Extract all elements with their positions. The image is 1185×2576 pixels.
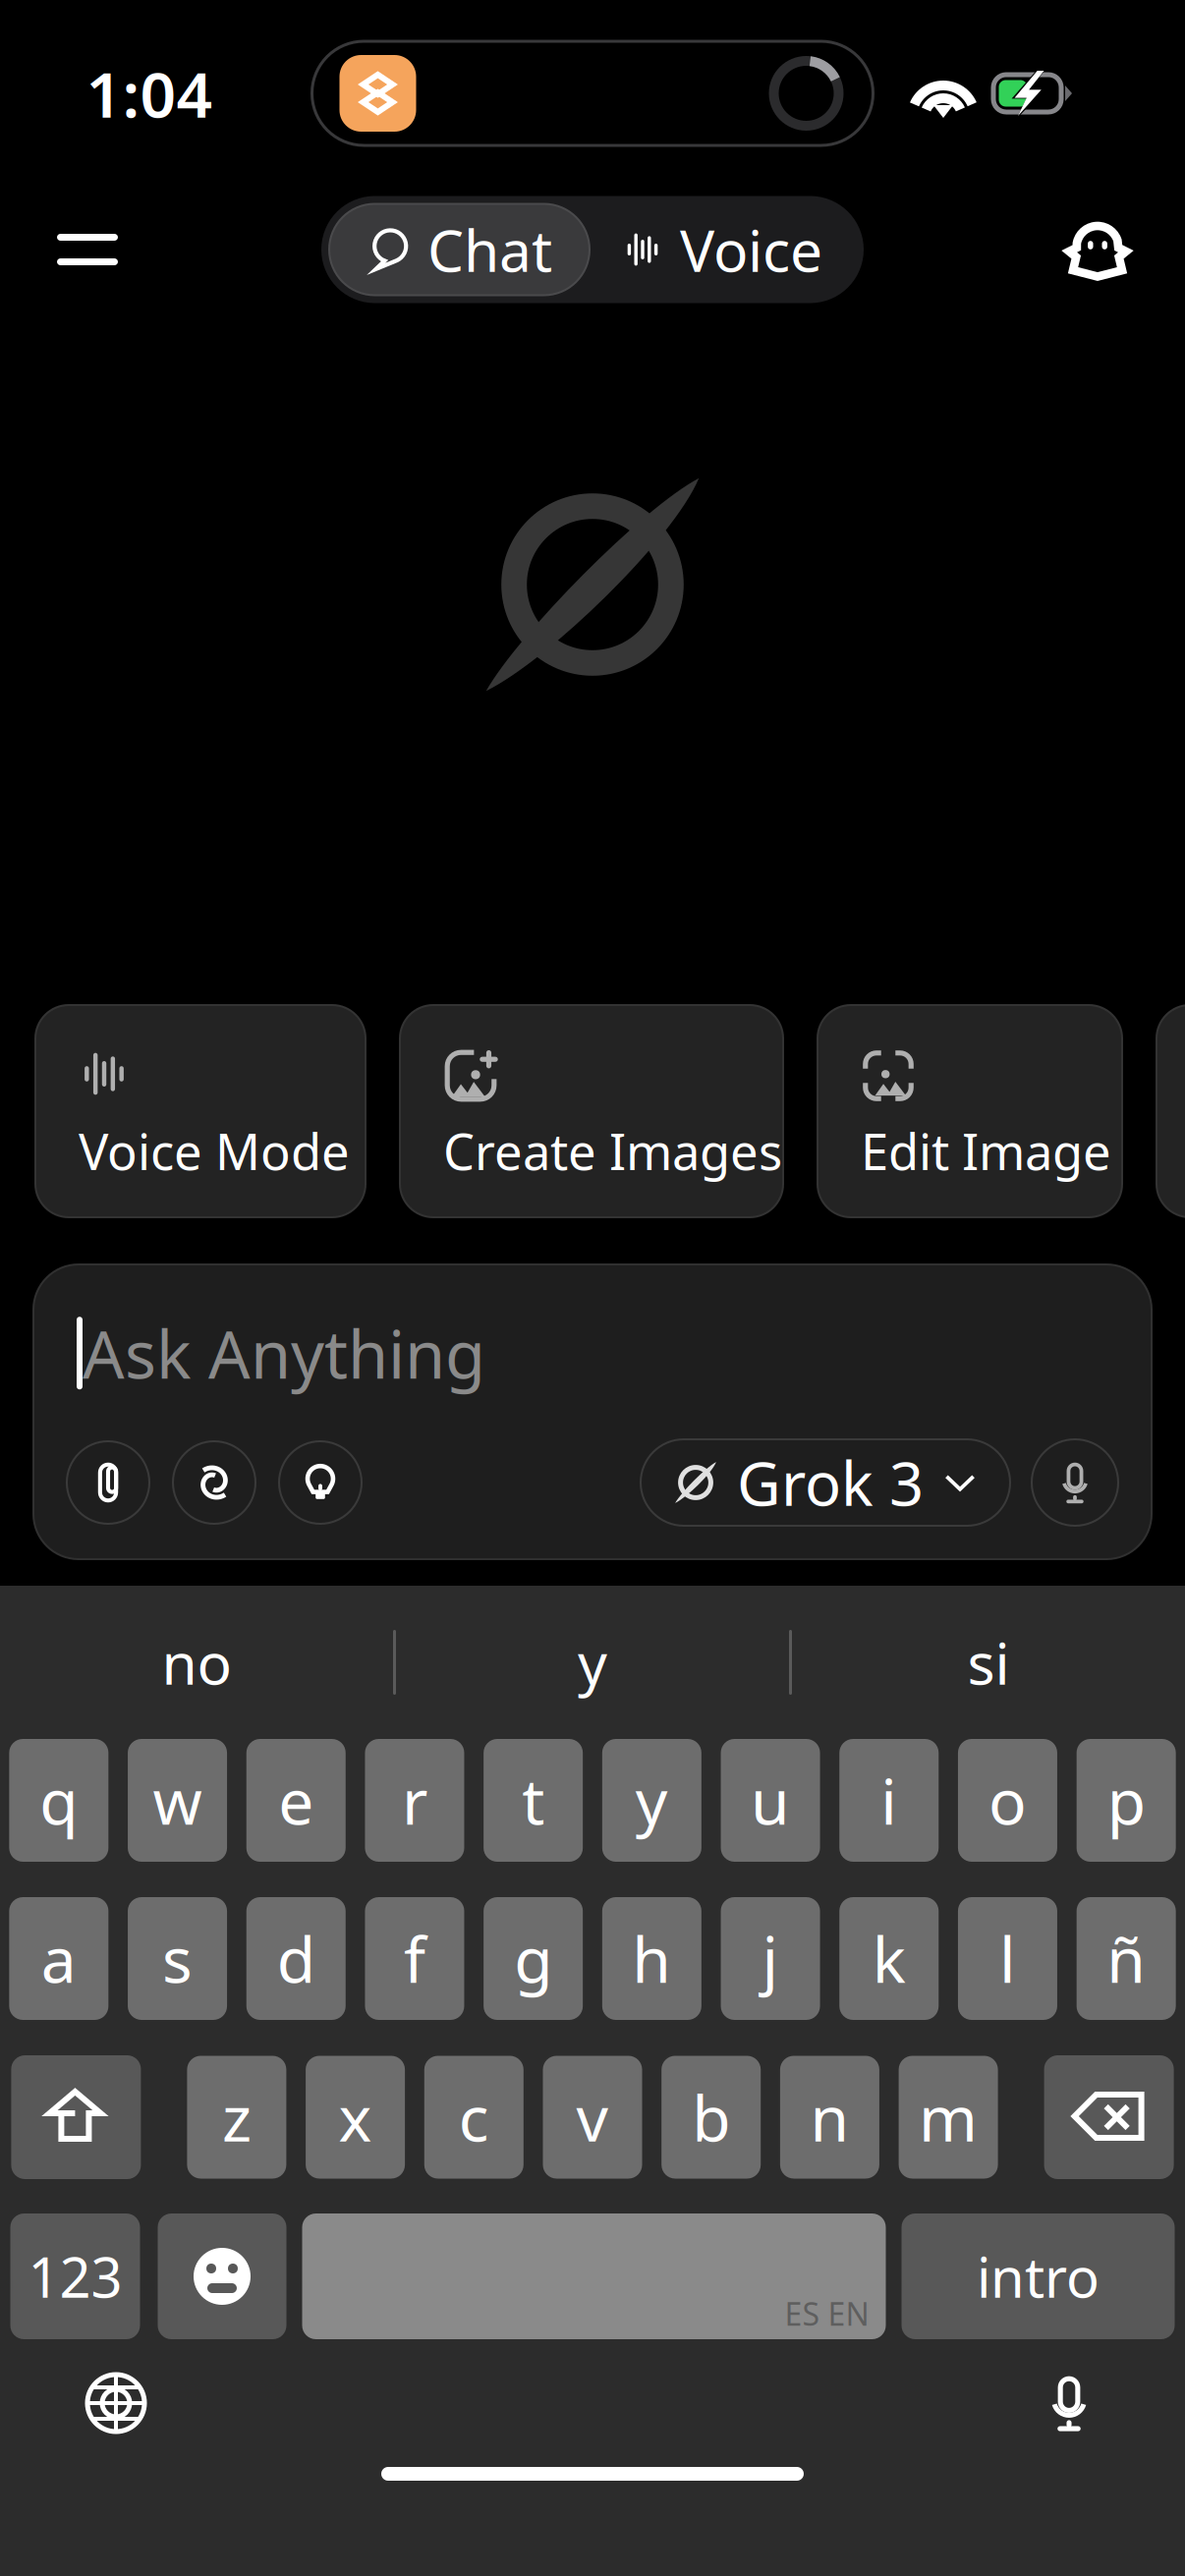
button[interactable]: Change keyboard [57,2349,175,2457]
staticText: s [162,1917,193,2000]
staticText: Grok 3 [737,1443,924,1523]
button[interactable]: z [187,2056,286,2179]
staticText: b [692,2075,730,2159]
button[interactable]: m [899,2056,998,2179]
staticText: k [872,1917,906,2000]
button[interactable]: t [484,1739,583,1862]
staticText: Voice [680,211,822,288]
button[interactable]: Ghost mode [1044,205,1152,294]
button[interactable]: Chat [329,204,590,295]
staticText: u [751,1759,790,1842]
button[interactable]: y [602,1739,701,1862]
staticText: e [278,1759,314,1842]
staticText: Create Images [443,1118,782,1184]
button[interactable]: Grok 3 [641,1439,1010,1526]
button[interactable] [158,2213,286,2339]
button[interactable]: q [9,1739,108,1862]
button[interactable]: intro [902,2213,1175,2339]
staticText: ES EN [785,2293,869,2334]
button[interactable]: x [306,2056,405,2179]
button[interactable]: w [128,1739,227,1862]
staticText: q [40,1759,78,1842]
button[interactable]: k [839,1897,939,2020]
button[interactable]: s [128,1897,227,2020]
button[interactable]: u [721,1739,820,1862]
button[interactable]: no [0,1589,393,1736]
staticText: n [810,2075,849,2159]
staticText: y [636,1759,668,1842]
button[interactable]: y [396,1589,789,1736]
button[interactable]: Think [279,1441,362,1524]
staticText: a [41,1917,77,2000]
staticText: t [522,1759,545,1842]
button[interactable]: g [484,1897,583,2020]
staticText: 123 [28,2240,122,2313]
button[interactable]: l [958,1897,1057,2020]
staticText: c [459,2075,489,2159]
button[interactable]: n [780,2056,879,2179]
button[interactable]: c [424,2056,524,2179]
button[interactable]: Edit Image [818,1005,1122,1217]
staticText: no [162,1624,231,1701]
staticText: Voice Mode [79,1118,350,1184]
button[interactable]: Menu [33,205,141,294]
staticText: intro [977,2240,1100,2313]
button[interactable]: h [602,1897,701,2020]
button[interactable]: Analyze [1157,1005,1185,1217]
button[interactable]: v [543,2056,642,2179]
staticText: m [919,2075,978,2159]
button[interactable]: ñ [1077,1897,1176,2020]
staticText: y [578,1624,607,1701]
staticText: j [762,1917,779,2000]
staticText: r [402,1759,427,1842]
button[interactable]: Dictate [1010,2349,1128,2457]
staticText: d [277,1917,315,2000]
button[interactable]: DeepSearch [173,1441,255,1524]
staticText: f [404,1917,425,2000]
staticText: x [339,2075,372,2159]
staticText: Edit Image [861,1118,1111,1184]
staticText: z [222,2075,251,2159]
button[interactable]: Voice [590,204,856,295]
staticText: Ask Anything [83,1310,485,1397]
staticText: g [514,1917,552,2000]
button[interactable]: Create Images [400,1005,783,1217]
button[interactable] [1044,2055,1174,2179]
button[interactable]: a [9,1897,108,2020]
button[interactable]: d [246,1897,346,2020]
button[interactable] [11,2055,141,2179]
button[interactable]: j [721,1897,820,2020]
staticText: w [153,1759,202,1842]
staticText: o [988,1759,1027,1842]
staticText: h [632,1917,671,2000]
button[interactable]: Voice Mode [35,1005,366,1217]
button[interactable]: p [1077,1739,1176,1862]
staticText: si [967,1624,1010,1701]
button[interactable]: r [365,1739,464,1862]
button[interactable]: Voice input [1032,1439,1118,1526]
staticText: 1:04 [86,52,213,135]
button[interactable]: 123 [10,2213,140,2339]
button[interactable]: Attach [67,1441,149,1524]
button[interactable]: o [958,1739,1057,1862]
button[interactable]: ES EN [302,2213,886,2339]
button[interactable]: f [365,1897,464,2020]
staticText: l [999,1917,1016,2000]
staticText: Chat [427,211,552,288]
button[interactable]: i [839,1739,939,1862]
staticText: i [881,1759,897,1842]
staticText: v [576,2075,609,2159]
button[interactable]: e [246,1739,346,1862]
button[interactable]: si [792,1589,1185,1736]
staticText: p [1107,1759,1145,1842]
staticText: ñ [1107,1917,1146,2000]
button[interactable]: b [661,2056,761,2179]
